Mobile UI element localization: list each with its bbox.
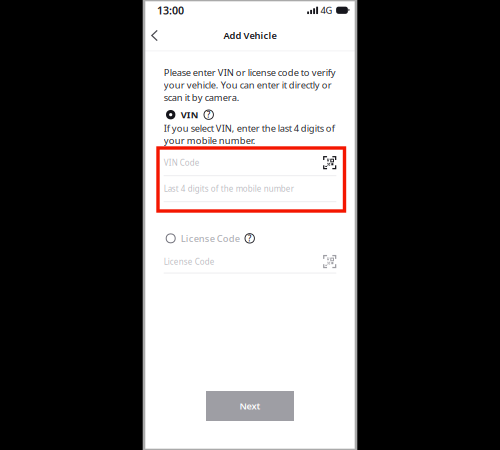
staticText: ? xyxy=(207,109,211,120)
staticText: VIN xyxy=(181,108,199,121)
staticText: VIN Code xyxy=(164,157,200,168)
staticText: Add Vehicle xyxy=(223,29,276,42)
button[interactable]: Next xyxy=(206,391,294,421)
staticText: License Code xyxy=(181,232,240,245)
staticText: License Code xyxy=(164,256,215,267)
staticText: Next xyxy=(239,400,260,412)
button[interactable]: Back xyxy=(144,22,164,48)
staticText: Please enter VIN or license code to veri… xyxy=(164,66,336,103)
staticText: 13:00 xyxy=(157,3,184,17)
staticText: If you select VIN, enter the last 4 digi… xyxy=(164,122,335,147)
staticText: 4G xyxy=(321,4,333,16)
staticText: Last 4 digits of the mobile number xyxy=(164,183,294,194)
staticText: ? xyxy=(248,233,252,244)
